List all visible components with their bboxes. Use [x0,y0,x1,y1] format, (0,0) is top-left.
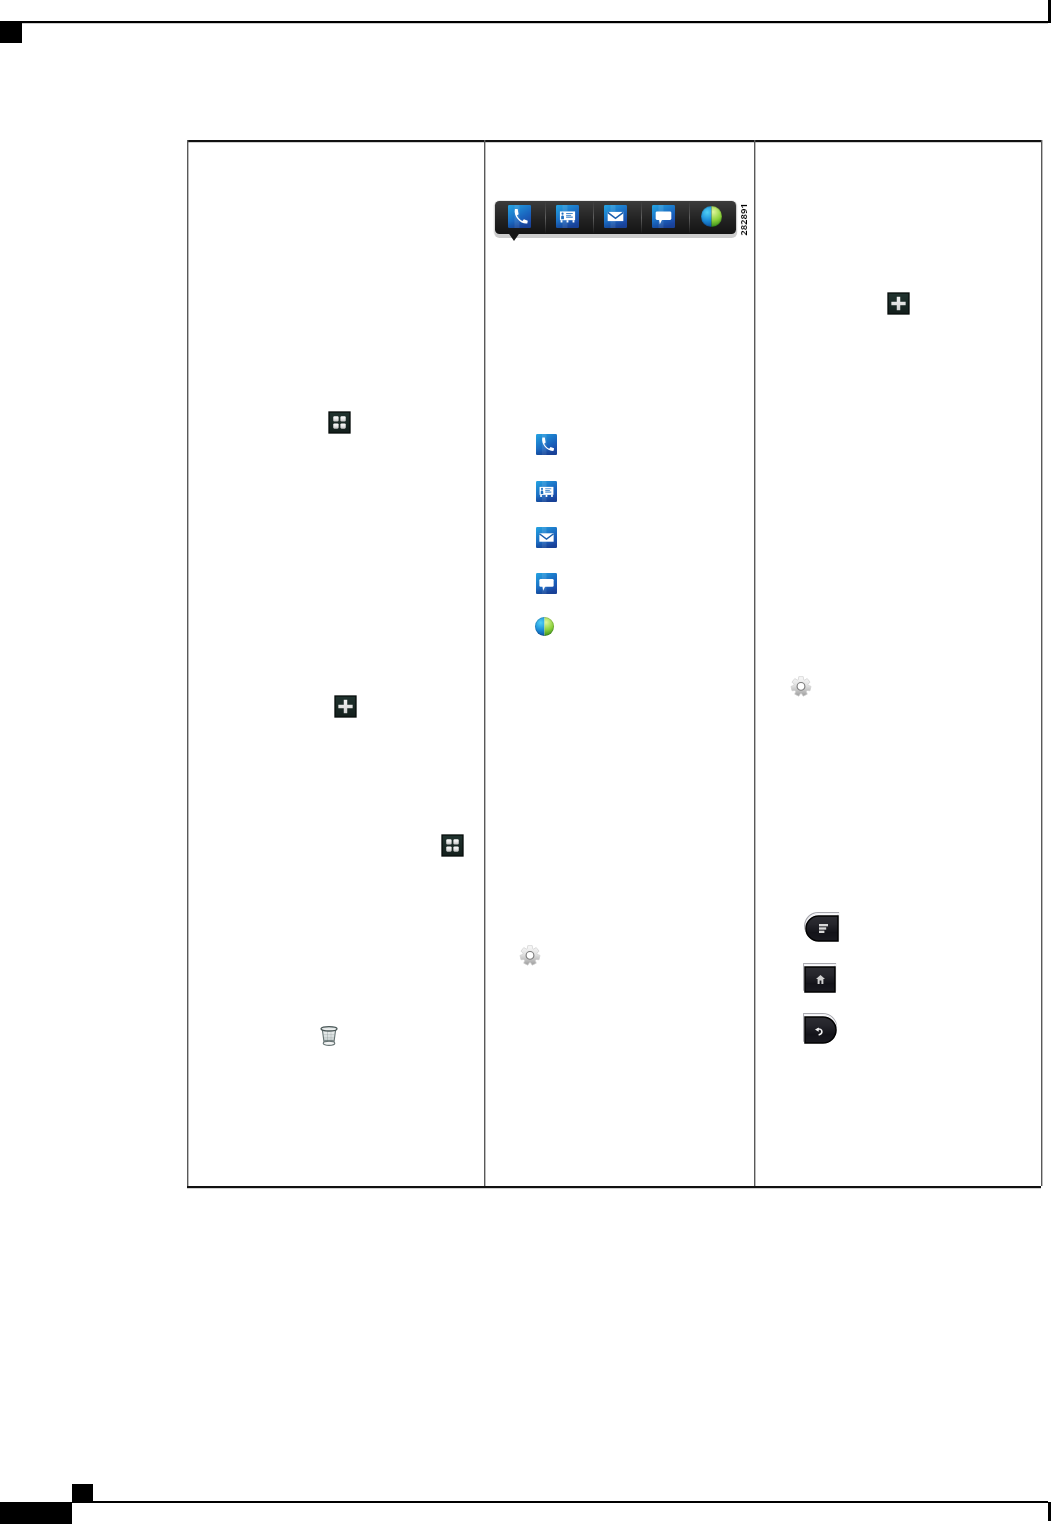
button[interactable]: Browser [687,200,735,233]
button[interactable]: Phone [495,200,543,233]
button[interactable]: Contacts [543,200,591,233]
button[interactable]: Email [536,527,557,548]
button[interactable]: Menu [806,916,838,941]
button[interactable]: Settings [791,676,811,696]
button[interactable]: Add [335,696,356,717]
button[interactable]: Messaging [639,200,687,233]
button[interactable]: Browser [535,617,554,636]
button[interactable]: Add [888,293,909,314]
staticText: 282891 [737,203,749,236]
button[interactable]: Home [805,967,835,992]
button[interactable]: Messaging [536,573,557,594]
button[interactable]: Settings [520,945,540,965]
button[interactable]: Back [805,1017,836,1043]
button[interactable]: Contacts [536,481,557,502]
button[interactable]: Apps [329,412,350,433]
button[interactable]: Phone [536,434,557,455]
button[interactable]: Delete [319,1026,339,1046]
button[interactable]: Apps [442,835,463,856]
button[interactable]: Email [591,200,639,233]
